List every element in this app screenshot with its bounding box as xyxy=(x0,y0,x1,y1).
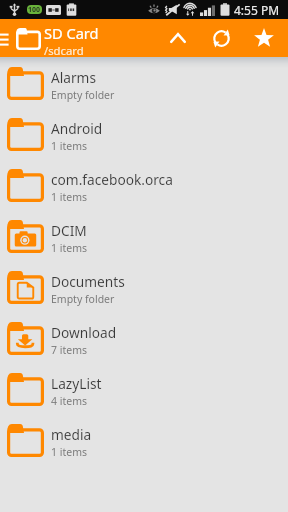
staticText: DCIM xyxy=(51,221,87,240)
button[interactable]: DCIM xyxy=(0,210,288,261)
button[interactable]: Up xyxy=(156,19,200,57)
staticText: /sdcard xyxy=(44,43,84,57)
staticText: 7 items xyxy=(51,343,88,357)
staticText: media xyxy=(51,425,92,444)
button[interactable]: Android xyxy=(0,108,288,159)
staticText: Documents xyxy=(51,272,125,291)
staticText: 1 items xyxy=(51,241,88,255)
staticText: LazyList xyxy=(51,374,102,393)
staticText: Empty folder xyxy=(51,292,115,306)
staticText: SD Card xyxy=(44,23,99,43)
button[interactable]: Refresh xyxy=(200,19,242,57)
staticText: 100 xyxy=(28,5,41,14)
staticText: com.facebook.orca xyxy=(51,170,173,189)
staticText: Empty folder xyxy=(51,88,115,102)
button[interactable]: Favorites xyxy=(242,19,286,57)
button[interactable]: LazyList xyxy=(0,363,288,414)
staticText: 1 items xyxy=(51,445,88,459)
staticText: Android xyxy=(51,119,103,138)
button[interactable]: com.facebook.orca xyxy=(0,159,288,210)
staticText: 4:55 PM xyxy=(234,2,280,18)
button[interactable]: Open navigation drawer xyxy=(0,19,13,57)
staticText: 1 items xyxy=(51,190,88,204)
button[interactable]: Documents xyxy=(0,261,288,312)
button[interactable]: media xyxy=(0,414,288,465)
staticText: 1 items xyxy=(51,139,88,153)
button[interactable]: Alarms xyxy=(0,57,288,108)
staticText: Alarms xyxy=(51,68,96,87)
staticText: 4 items xyxy=(51,394,88,408)
staticText: Download xyxy=(51,323,117,342)
button[interactable]: Download xyxy=(0,312,288,363)
